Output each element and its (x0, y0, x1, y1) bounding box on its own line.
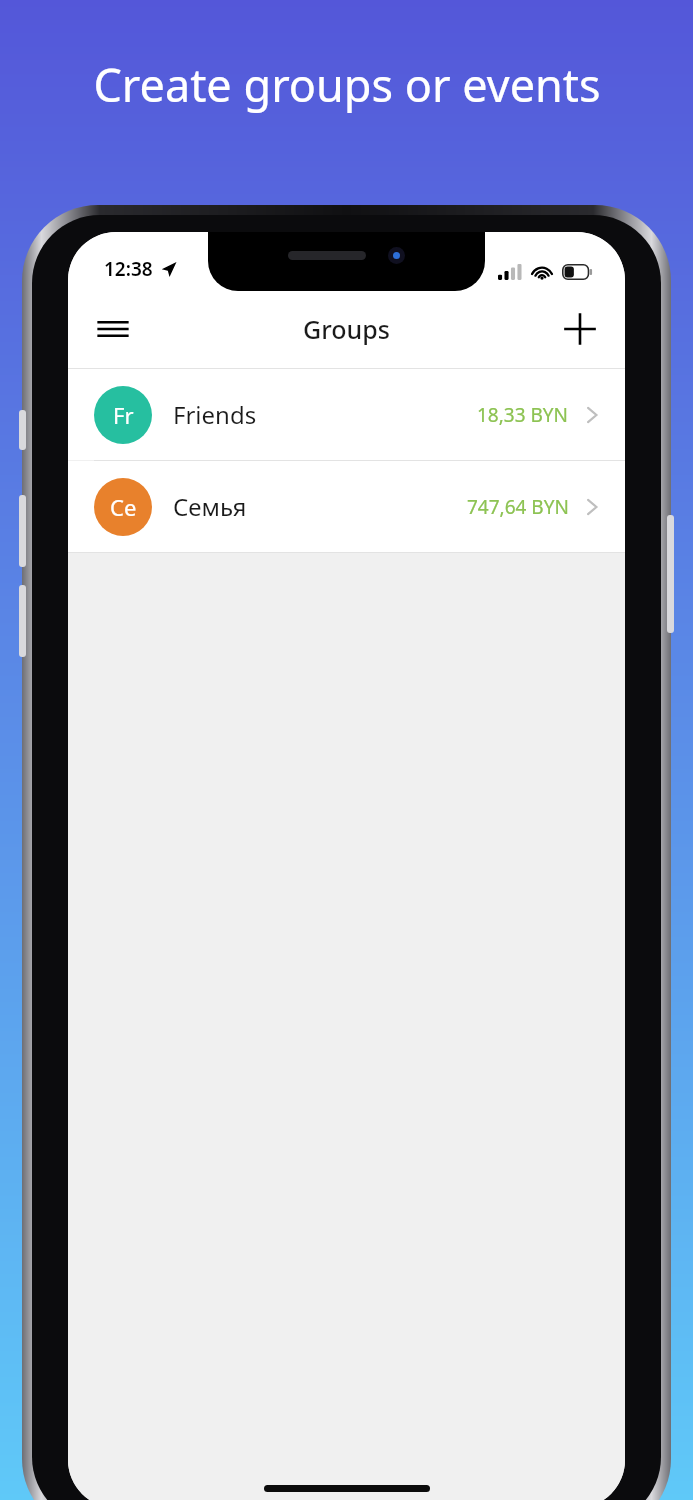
button[interactable]: Add group (553, 302, 607, 356)
staticText: 747,64 BYN (467, 494, 569, 520)
staticText: Fr (113, 400, 134, 430)
staticText: Friends (173, 398, 257, 431)
button[interactable]: Open navigation menu (86, 302, 140, 356)
staticText: Ce (110, 492, 137, 522)
button[interactable]: Ce (68, 461, 625, 552)
staticText: 12:38 (104, 256, 153, 282)
staticText: Create groups or events (93, 54, 601, 115)
staticText: Семья (173, 490, 247, 523)
staticText: 18,33 BYN (477, 402, 569, 428)
button[interactable]: Fr (68, 369, 625, 460)
staticText: Groups (303, 312, 390, 346)
